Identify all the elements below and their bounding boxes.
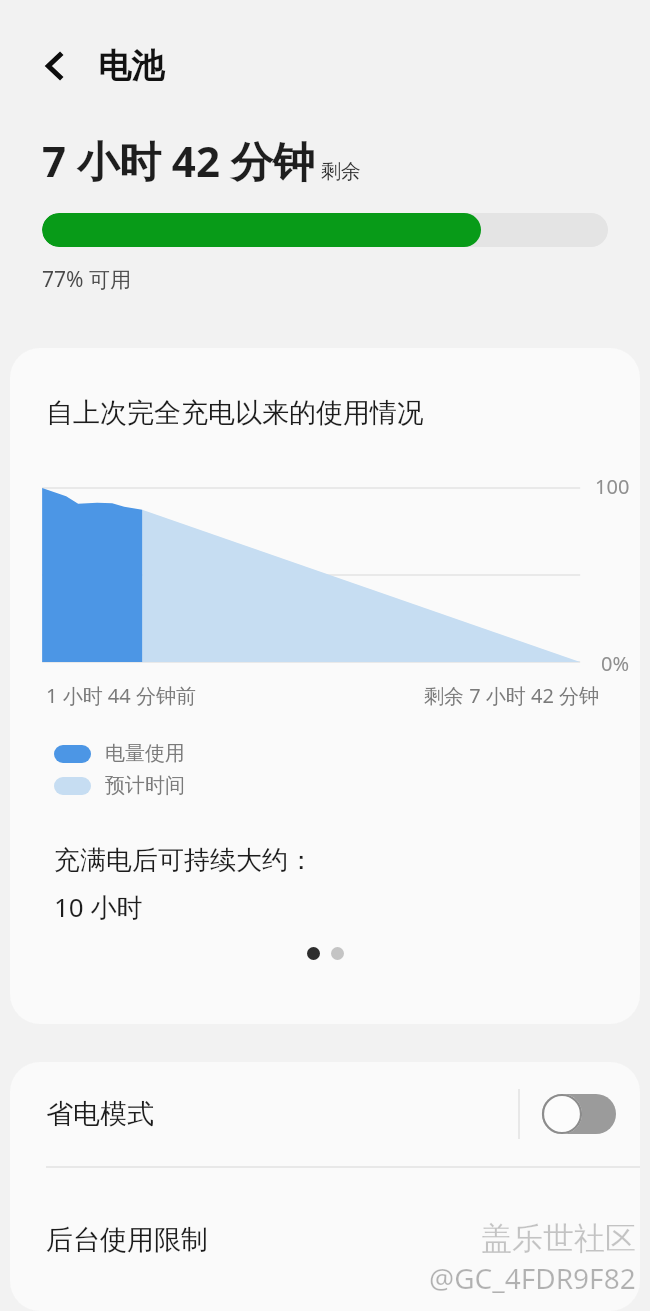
staticText: 7 小时 42 分钟 bbox=[42, 132, 315, 189]
button[interactable]: 后台使用限制 bbox=[10, 1168, 640, 1311]
staticText: 电量使用 bbox=[105, 741, 185, 766]
staticText: 电池 bbox=[98, 45, 164, 87]
staticText: 1 小时 44 分钟前 bbox=[46, 682, 196, 709]
staticText: 后台使用限制 bbox=[46, 1223, 208, 1257]
staticText: 77% 可用 bbox=[42, 265, 131, 294]
staticText: 盖乐世社区 bbox=[481, 1219, 636, 1258]
button[interactable]: Power saving toggle bbox=[542, 1093, 616, 1135]
staticText: 剩余 7 小时 42 分钟 bbox=[424, 682, 600, 709]
staticText: 0% bbox=[601, 650, 630, 677]
staticText: @GC_4FDR9F82 bbox=[429, 1259, 636, 1297]
staticText: 剩余 bbox=[321, 159, 361, 184]
staticText: 100 bbox=[595, 473, 630, 500]
staticText: 充满电后可持续大约： bbox=[54, 844, 314, 877]
button[interactable]: Back bbox=[28, 38, 84, 94]
staticText: 自上次完全充电以来的使用情况 bbox=[46, 396, 424, 430]
staticText: 预计时间 bbox=[105, 773, 185, 798]
staticText: 省电模式 bbox=[46, 1097, 154, 1131]
staticText: 10 小时 bbox=[54, 889, 143, 925]
button[interactable]: 省电模式 bbox=[10, 1062, 640, 1166]
